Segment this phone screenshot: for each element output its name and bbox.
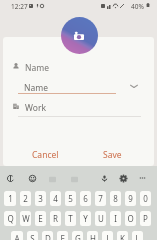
button[interactable]: 0 <box>140 191 151 206</box>
button[interactable]: K <box>117 231 128 240</box>
button[interactable]: O <box>125 211 136 226</box>
staticText: 1 <box>8 193 13 204</box>
button[interactable]: Microphone <box>99 173 110 184</box>
button[interactable]: Cancel <box>27 144 64 166</box>
button[interactable]: P <box>140 211 151 226</box>
staticText: D <box>45 233 51 240</box>
button[interactable]: R <box>50 211 61 226</box>
staticText: Work <box>25 102 46 114</box>
staticText: W <box>22 213 30 224</box>
button[interactable]: Voice typing <box>5 173 16 184</box>
staticText: G <box>75 233 81 240</box>
staticText: S <box>30 233 35 240</box>
staticText: H <box>90 233 96 240</box>
staticText: Q <box>7 213 14 224</box>
staticText: P <box>143 213 148 224</box>
button[interactable]: 3 <box>35 191 46 206</box>
button[interactable]: 7 <box>95 191 106 206</box>
button[interactable]: Clipboard <box>47 174 58 185</box>
staticText: Save <box>103 149 122 161</box>
staticText: 6 <box>83 193 88 204</box>
button[interactable]: Keyboard settings <box>118 173 129 184</box>
staticText: Y <box>83 213 88 224</box>
button[interactable]: Change profile photo <box>61 17 98 54</box>
button[interactable]: More options <box>137 173 148 184</box>
button[interactable]: 5 <box>65 191 76 206</box>
button[interactable]: W <box>20 211 31 226</box>
staticText: I <box>114 213 117 224</box>
staticText: 2 <box>23 193 28 204</box>
staticText: O <box>127 213 134 224</box>
button[interactable]: I <box>110 211 121 226</box>
staticText: E <box>38 213 43 224</box>
staticText: 8 <box>113 193 118 204</box>
button[interactable]: 6 <box>80 191 91 206</box>
button[interactable]: F <box>57 231 68 240</box>
staticText: 12:27 <box>11 2 28 11</box>
button[interactable]: L <box>132 231 143 240</box>
staticText: L <box>135 233 140 240</box>
staticText: 40% <box>131 2 144 11</box>
staticText: F <box>60 233 65 240</box>
button[interactable]: Q <box>4 211 16 226</box>
button[interactable]: G <box>72 231 83 240</box>
button[interactable]: E <box>35 211 46 226</box>
staticText: 7 <box>98 193 103 204</box>
button[interactable]: Emoji <box>27 173 38 184</box>
staticText: Cancel <box>32 149 59 161</box>
staticText: 3 <box>38 193 43 204</box>
button[interactable]: A <box>11 231 23 240</box>
button[interactable]: U <box>95 211 106 226</box>
button[interactable]: H <box>87 231 98 240</box>
staticText: R <box>53 213 58 224</box>
button[interactable]: J <box>102 231 113 240</box>
button[interactable]: 2 <box>20 191 31 206</box>
button[interactable]: Save <box>98 144 127 166</box>
button[interactable]: 4 <box>50 191 61 206</box>
button[interactable]: Y <box>80 211 91 226</box>
staticText: 9 <box>128 193 133 204</box>
button[interactable]: T <box>65 211 76 226</box>
staticText: Name <box>24 82 48 94</box>
button[interactable]: 1 <box>4 191 16 206</box>
button[interactable]: S <box>27 231 38 240</box>
staticText: 5 <box>68 193 73 204</box>
staticText: J <box>106 233 109 240</box>
staticText: 0 <box>143 193 148 204</box>
staticText: A <box>14 233 20 240</box>
button[interactable]: 8 <box>110 191 121 206</box>
staticText: 4 <box>53 193 58 204</box>
button[interactable]: Expand name fields <box>128 80 140 92</box>
staticText: Name <box>25 62 49 74</box>
staticText: U <box>98 213 104 224</box>
button[interactable]: 9 <box>125 191 136 206</box>
button[interactable]: Stickers <box>69 174 80 185</box>
staticText: K <box>120 233 125 240</box>
staticText: T <box>68 213 73 224</box>
button[interactable]: D <box>42 231 53 240</box>
